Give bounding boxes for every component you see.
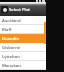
staticText: Lyttelton	[2, 54, 20, 60]
staticText: Select Plot	[9, 7, 30, 13]
button[interactable]: App icon	[1, 6, 8, 13]
staticText: Manukau	[2, 63, 21, 69]
button[interactable]: Manukau	[0, 61, 46, 70]
staticText: Dunedin	[2, 36, 20, 42]
button[interactable]: Bluff	[0, 25, 46, 34]
button[interactable]: Lyttelton	[0, 52, 46, 61]
button[interactable]: Gisborne	[0, 43, 46, 52]
button[interactable]: Dunedin	[0, 34, 46, 43]
staticText: Auckland	[2, 18, 21, 24]
staticText: Gisborne	[2, 45, 21, 51]
staticText: Bluff	[2, 27, 12, 33]
button[interactable]: Auckland	[0, 16, 46, 25]
